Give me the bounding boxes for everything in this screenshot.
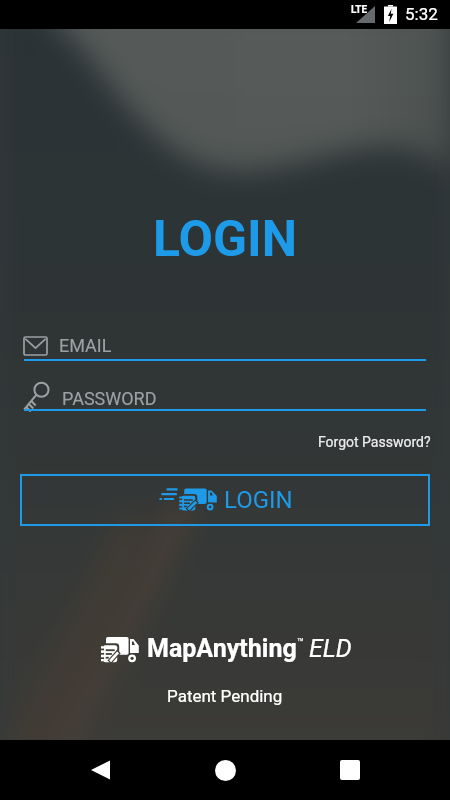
staticText: EMAIL [59, 335, 112, 356]
staticText: Forgot Password? [318, 434, 431, 450]
staticText: LTE [351, 4, 368, 16]
staticText: PASSWORD [62, 388, 157, 409]
staticText: ™ [297, 636, 304, 649]
button[interactable]: Recent apps [320, 740, 380, 800]
staticText: Patent Pending [167, 686, 283, 706]
button[interactable]: EMAIL [24, 332, 426, 365]
button[interactable]: LOGIN [20, 474, 430, 526]
staticText: LOGIN [153, 210, 297, 269]
button[interactable]: PASSWORD [24, 381, 426, 415]
staticText: LOGIN [224, 486, 293, 514]
staticText: ELD [309, 634, 352, 663]
staticText: MapAnything [147, 634, 297, 663]
button[interactable]: Back [70, 740, 130, 800]
staticText: 5:32 [405, 4, 438, 24]
button[interactable]: Forgot Password? [318, 434, 431, 450]
button[interactable]: Home [195, 740, 255, 800]
